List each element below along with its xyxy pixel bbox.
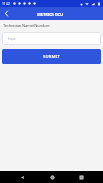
staticText: 11:22	[2, 1, 11, 6]
staticText: METRICS DCU	[37, 12, 63, 18]
button[interactable]: SUBMIT	[2, 49, 101, 64]
button[interactable]: Back	[0, 7, 13, 20]
button[interactable]: Back	[15, 171, 29, 183]
button[interactable]: Home	[45, 171, 59, 183]
button[interactable]: Recents	[74, 171, 88, 183]
button[interactable]: Input	[2, 32, 101, 45]
staticText: Technician Name/Number:	[3, 23, 50, 29]
staticText: Input	[8, 37, 16, 41]
staticText: SUBMIT	[43, 54, 61, 60]
